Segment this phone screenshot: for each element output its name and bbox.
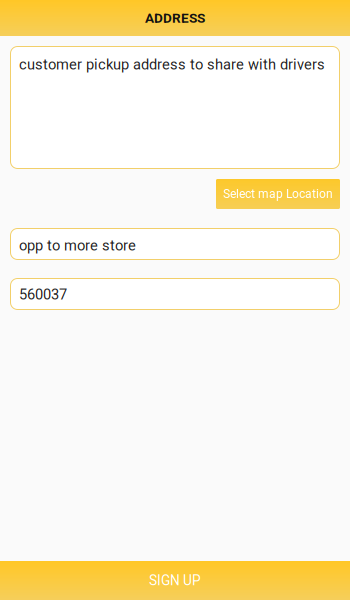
- staticText: customer pickup address to share with dr…: [19, 56, 325, 73]
- staticText: ADDRESS: [145, 10, 205, 26]
- staticText: opp to more store: [19, 237, 136, 254]
- button[interactable]: Select map Location: [216, 179, 340, 209]
- button[interactable]: opp to more store: [10, 228, 340, 260]
- button[interactable]: customer pickup address to share with dr…: [10, 46, 340, 169]
- staticText: 560037: [19, 286, 67, 303]
- staticText: Select map Location: [223, 187, 333, 201]
- button[interactable]: SIGN UP: [0, 561, 350, 600]
- staticText: SIGN UP: [149, 572, 201, 589]
- button[interactable]: 560037: [10, 278, 340, 310]
